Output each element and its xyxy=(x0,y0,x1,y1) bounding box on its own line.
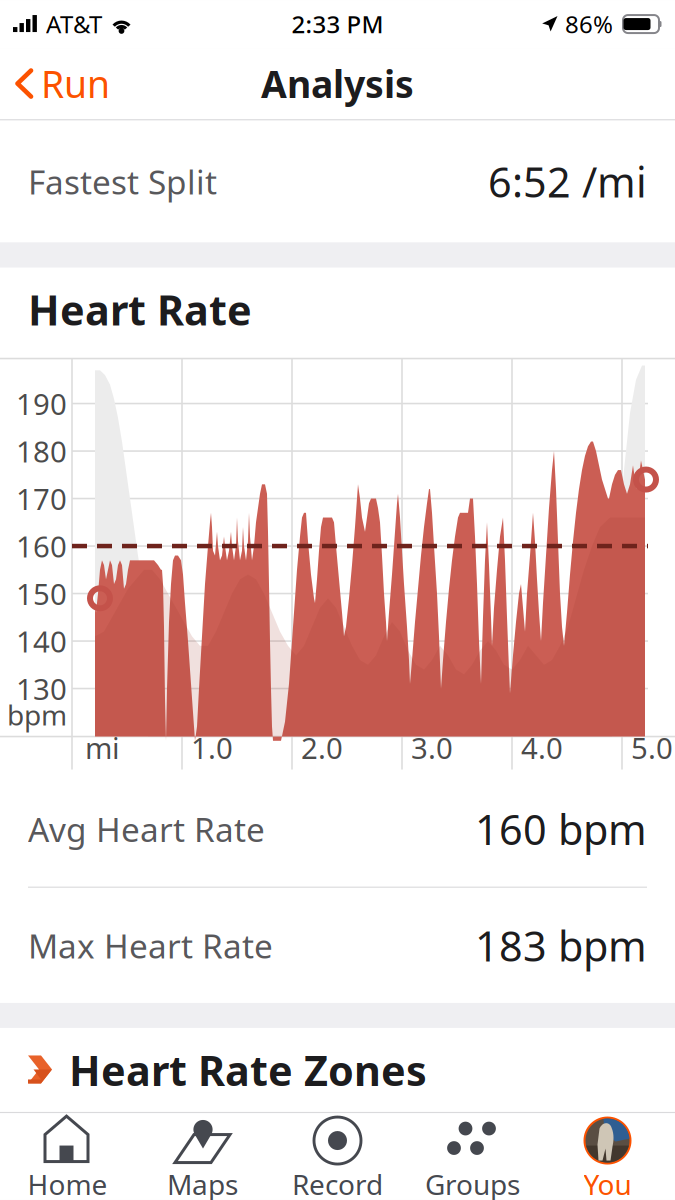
staticText: Analysis xyxy=(261,59,414,108)
staticText: Home xyxy=(27,1165,107,1200)
staticText: You xyxy=(583,1165,631,1200)
staticText: 3.0 xyxy=(411,728,453,767)
staticText: mi xyxy=(85,728,120,767)
button[interactable]: Run xyxy=(0,51,120,115)
button[interactable]: Record xyxy=(270,1113,405,1200)
staticText: Record xyxy=(292,1165,383,1200)
button[interactable]: You xyxy=(540,1113,675,1200)
staticText: Groups xyxy=(425,1165,520,1200)
button[interactable]: Avg Heart Rate xyxy=(0,771,675,886)
staticText: 2:33 PM xyxy=(291,8,383,40)
button[interactable]: Maps xyxy=(135,1113,270,1200)
staticText: Max Heart Rate xyxy=(28,923,273,968)
staticText: bpm xyxy=(7,696,67,733)
staticText: Maps xyxy=(167,1165,238,1200)
staticText: 5.0 xyxy=(631,728,673,767)
staticText: 183 bpm xyxy=(475,918,647,973)
staticText: Run xyxy=(41,59,110,108)
staticText: Avg Heart Rate xyxy=(28,807,265,851)
staticText: 130 xyxy=(16,669,67,708)
button[interactable]: Max Heart Rate xyxy=(0,888,675,1003)
staticText: Heart Rate Zones xyxy=(69,1042,427,1097)
staticText: Heart Rate xyxy=(28,282,252,337)
staticText: 170 xyxy=(16,479,67,518)
button[interactable]: Fastest Split xyxy=(0,120,675,242)
staticText: 4.0 xyxy=(521,728,563,767)
staticText: 140 xyxy=(16,622,67,661)
staticText: 1.0 xyxy=(191,728,233,767)
staticText: 2.0 xyxy=(301,728,343,767)
staticText: 160 bpm xyxy=(475,802,647,856)
staticText: AT&T xyxy=(46,8,102,40)
staticText: 6:52 /mi xyxy=(488,154,647,209)
staticText: 86% xyxy=(565,8,613,40)
staticText: 180 xyxy=(16,432,67,471)
staticText: 160 xyxy=(16,527,67,566)
button[interactable]: Heart Rate Zones xyxy=(0,1028,675,1112)
button[interactable]: Groups xyxy=(405,1113,540,1200)
staticText: Fastest Split xyxy=(28,159,217,204)
staticText: 190 xyxy=(16,384,67,423)
button[interactable]: Home xyxy=(0,1113,135,1200)
staticText: 150 xyxy=(16,574,67,613)
